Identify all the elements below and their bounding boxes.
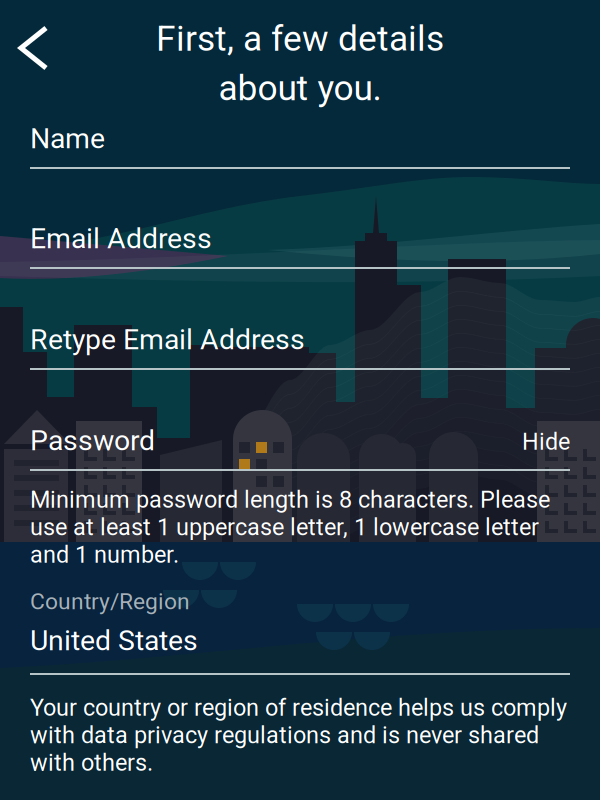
button[interactable]: Back xyxy=(0,0,68,96)
staticText: Country/Region xyxy=(30,588,190,615)
staticText: Password xyxy=(30,424,155,457)
staticText: Hide xyxy=(522,428,570,455)
staticText: Name xyxy=(30,122,105,155)
staticText: United States xyxy=(30,624,198,657)
staticText: Retype Email Address xyxy=(30,323,305,356)
staticText: Your country or region of residence help… xyxy=(30,694,567,776)
staticText: First, a few details xyxy=(156,18,444,59)
staticText: about you. xyxy=(218,67,381,109)
button[interactable]: Hide xyxy=(522,428,570,455)
staticText: Email Address xyxy=(30,222,212,255)
staticText: Minimum password length is 8 characters.… xyxy=(30,486,550,568)
